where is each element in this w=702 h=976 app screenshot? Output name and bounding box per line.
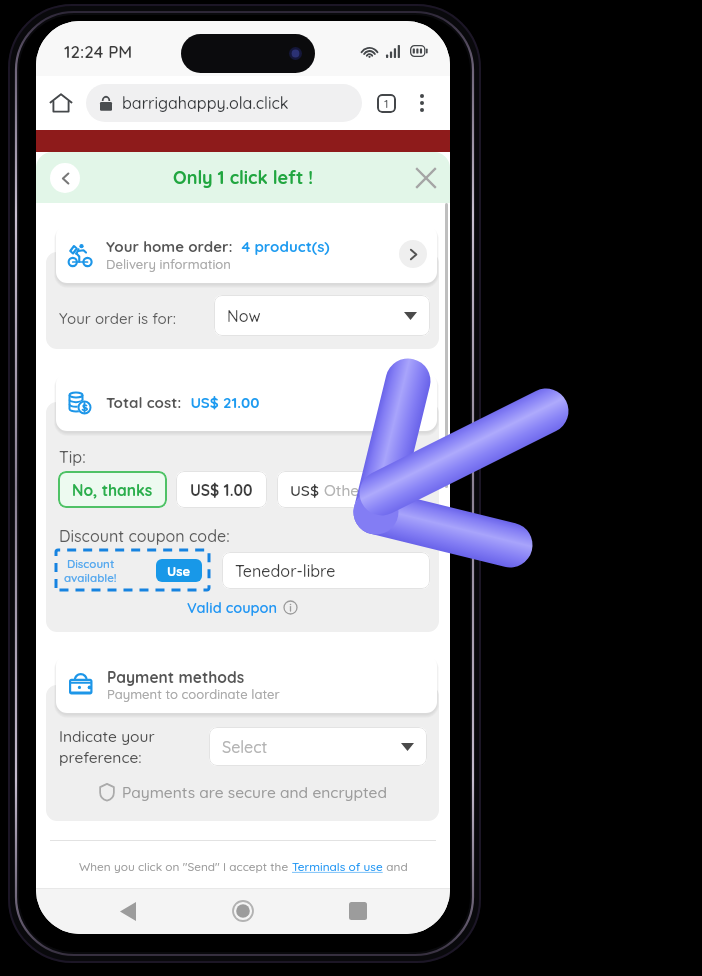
staticText: Your order is for: bbox=[59, 309, 176, 328]
button[interactable]: Discount bbox=[56, 550, 209, 590]
staticText: Payments are secure and encrypted bbox=[122, 782, 387, 801]
staticText: barrigahappy.ola.click bbox=[122, 93, 289, 113]
staticText: preference: bbox=[59, 747, 142, 766]
staticText: Only 1 click left ! bbox=[173, 166, 314, 189]
staticText: When you click on "Send" I accept the bbox=[79, 859, 292, 874]
staticText: Use bbox=[167, 563, 191, 579]
staticText: Now bbox=[227, 306, 261, 326]
staticText: US$ 1.00 bbox=[190, 480, 253, 499]
staticText: Discount bbox=[67, 556, 115, 570]
staticText: Your home order: bbox=[106, 237, 233, 256]
button[interactable]: Use bbox=[156, 559, 202, 582]
button[interactable]: barrigahappy.ola.click bbox=[86, 84, 362, 122]
staticText: US$ bbox=[290, 480, 324, 499]
button[interactable]: Home bbox=[42, 84, 80, 122]
staticText: available! bbox=[64, 570, 117, 584]
staticText: Indicate your bbox=[59, 726, 155, 745]
button[interactable]: US$ 1.00 bbox=[176, 471, 267, 508]
button[interactable]: US$ bbox=[277, 471, 419, 508]
button[interactable]: Close bbox=[410, 162, 442, 194]
staticText: US$ 21.00 bbox=[182, 393, 260, 412]
button[interactable]: Back bbox=[105, 888, 151, 934]
staticText: Tenedor-libre bbox=[235, 561, 336, 581]
staticText: 4 product(s) bbox=[233, 237, 330, 256]
button[interactable]: Home bbox=[220, 888, 266, 934]
staticText: Payment to coordinate later bbox=[107, 686, 280, 702]
button[interactable]: Tabs bbox=[371, 88, 401, 118]
staticText: 1 bbox=[384, 96, 389, 111]
staticText: Valid coupon bbox=[187, 598, 278, 616]
staticText: and bbox=[383, 859, 408, 874]
staticText: No, thanks bbox=[72, 480, 153, 499]
button[interactable]: No, thanks bbox=[58, 471, 167, 508]
button[interactable]: Back bbox=[50, 163, 80, 193]
staticText: Payment methods bbox=[107, 667, 245, 686]
button[interactable]: Tenedor-libre bbox=[222, 552, 430, 589]
staticText: Total cost: bbox=[106, 393, 182, 412]
staticText: Discount coupon code: bbox=[59, 526, 230, 546]
button[interactable]: Your home order: bbox=[56, 225, 437, 283]
staticText: Other bbox=[324, 480, 366, 499]
staticText: Select bbox=[222, 737, 268, 757]
staticText: Tip: bbox=[59, 447, 86, 467]
button[interactable]: More options bbox=[407, 88, 437, 118]
button[interactable]: Select bbox=[209, 727, 427, 766]
button[interactable]: Payment methods bbox=[56, 655, 437, 713]
staticText: 12:24 PM bbox=[64, 41, 133, 62]
button[interactable]: Now bbox=[214, 295, 430, 336]
staticText: Delivery information bbox=[106, 256, 231, 272]
staticText: Terminals of use bbox=[292, 859, 383, 874]
button[interactable]: Recent apps bbox=[335, 888, 381, 934]
button[interactable]: Total cost: bbox=[56, 373, 437, 431]
